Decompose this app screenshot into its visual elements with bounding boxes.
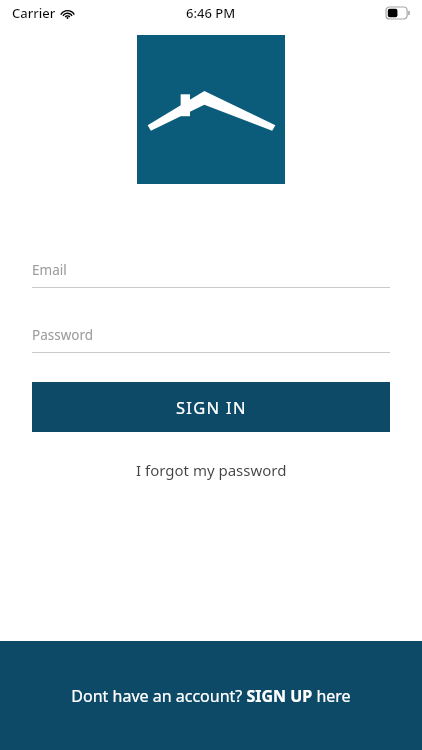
- other: App logo: [137, 35, 285, 184]
- staticText: Password: [32, 326, 94, 344]
- staticText: Carrier: [12, 4, 56, 22]
- staticText: 6:46 PM: [186, 4, 236, 22]
- button[interactable]: I forgot my password: [122, 454, 301, 486]
- button[interactable]: Dont have an account? SIGN UP here: [0, 641, 422, 750]
- button[interactable]: SIGN IN: [32, 382, 390, 432]
- staticText: Dont have an account? SIGN UP here: [71, 685, 351, 707]
- button[interactable]: Password: [32, 326, 390, 353]
- staticText: Email: [32, 261, 67, 279]
- button[interactable]: Email: [32, 261, 390, 288]
- staticText: I forgot my password: [136, 460, 287, 480]
- staticText: SIGN IN: [176, 396, 247, 418]
